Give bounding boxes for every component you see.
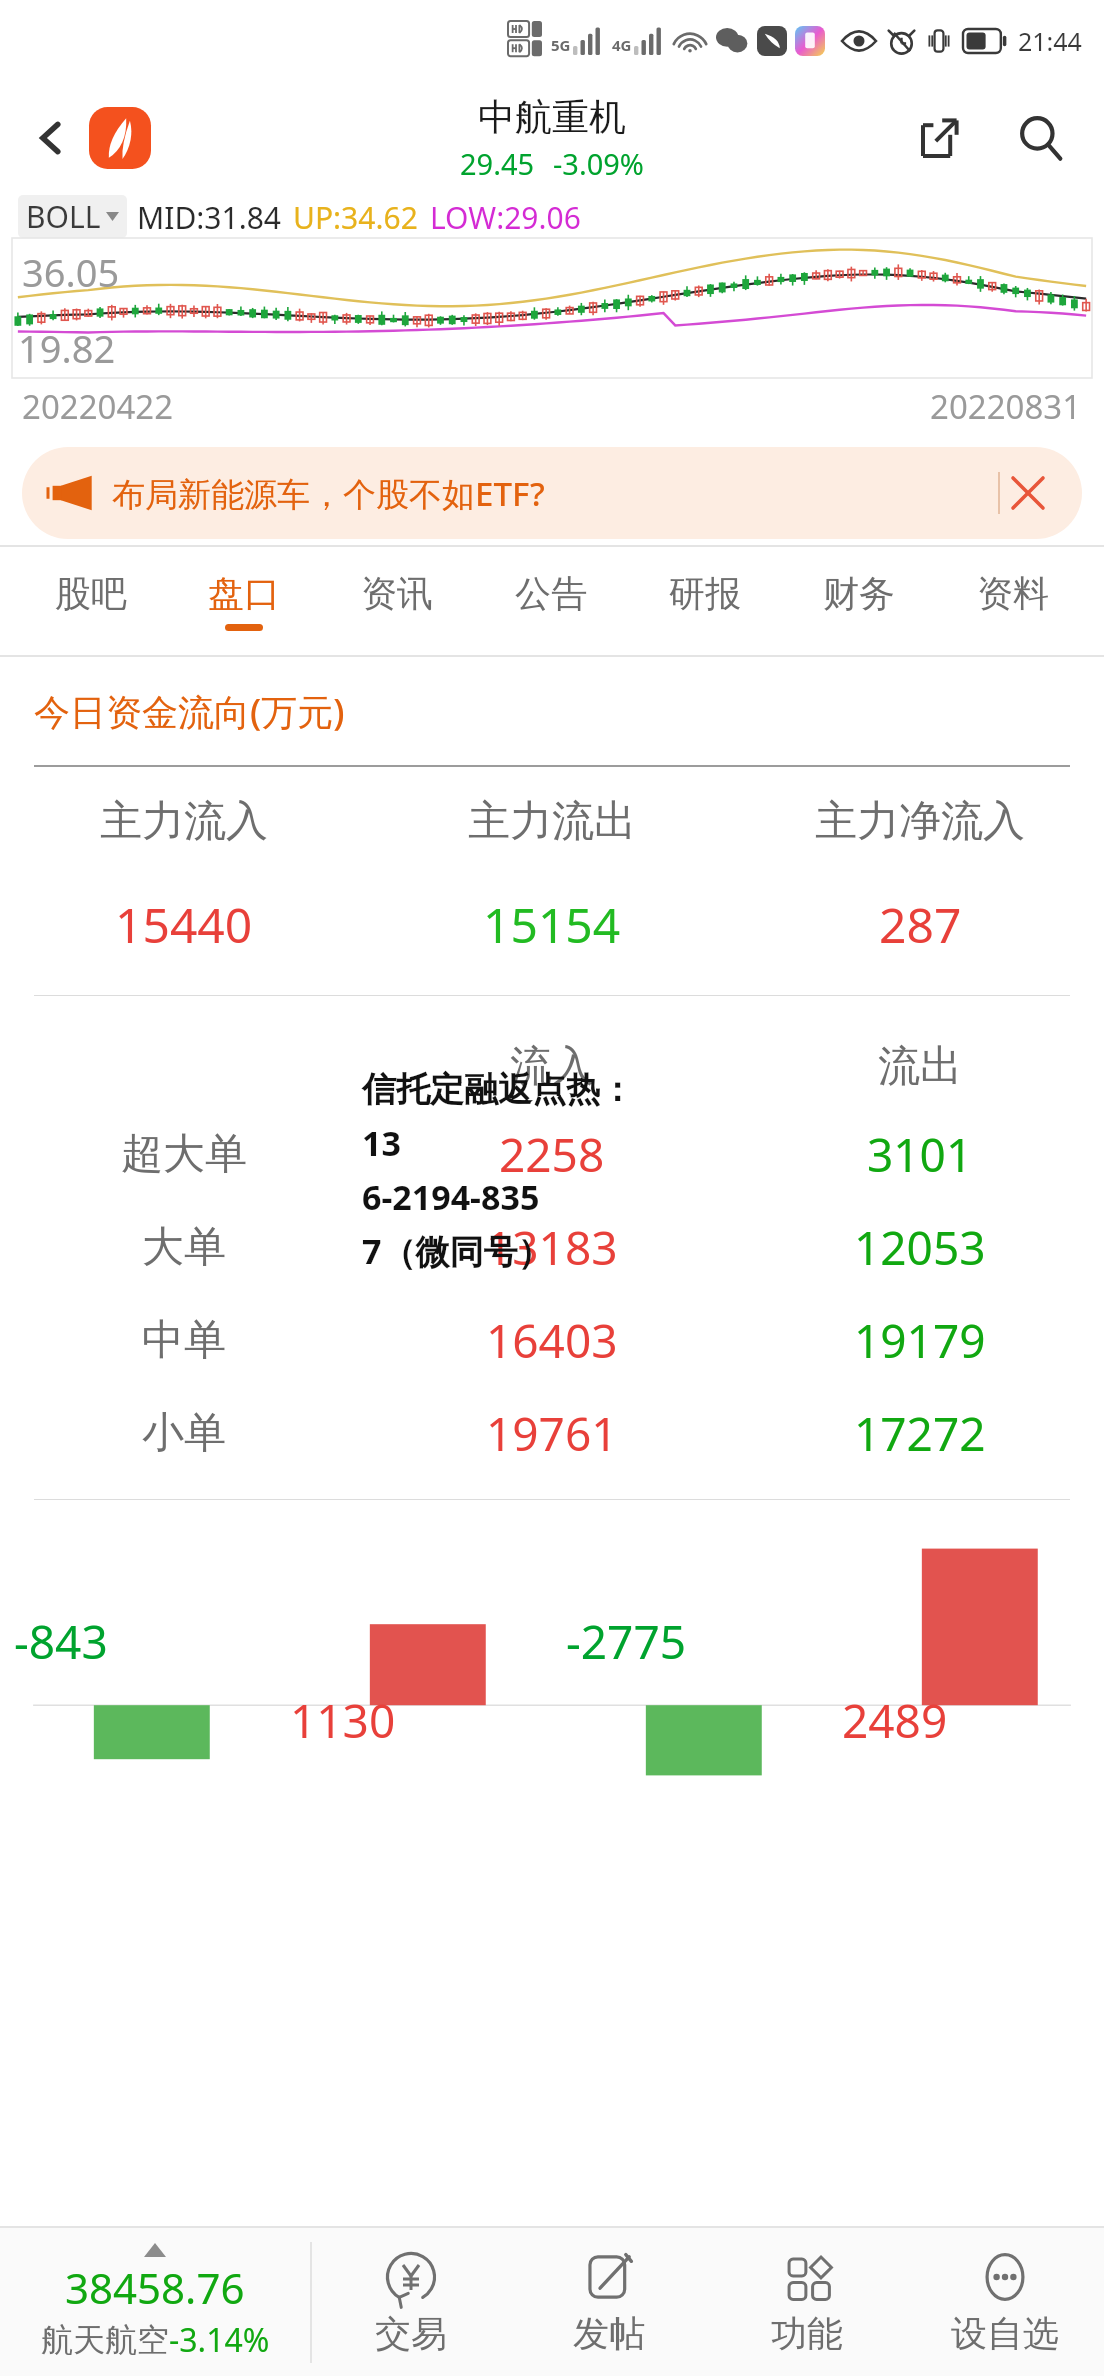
staticText: 布局新能源车，个股不如ETF? <box>112 471 545 516</box>
staticText: 29.45 <box>460 144 535 183</box>
staticText: 主力流入 <box>100 795 268 848</box>
button[interactable]: 设自选 <box>906 2228 1104 2376</box>
button[interactable]: 交易 <box>312 2228 510 2376</box>
staticText: -2775 <box>566 1610 687 1673</box>
button[interactable]: 小单 <box>0 1402 1104 1465</box>
button[interactable]: App logo <box>86 104 154 172</box>
staticText: -3.09% <box>553 144 644 183</box>
staticText: 资讯 <box>361 571 433 616</box>
staticText: 交易 <box>375 2311 447 2356</box>
staticText: 19761 <box>486 1402 618 1465</box>
button[interactable]: 38458.76 <box>0 2228 310 2376</box>
staticText: BOLL <box>26 196 101 237</box>
button[interactable]: Back <box>20 107 82 169</box>
staticText: 12053 <box>854 1216 986 1279</box>
staticText: 4G <box>612 35 632 55</box>
staticText: -3.14% <box>169 2318 270 2362</box>
staticText: 20220422 <box>22 384 174 429</box>
button[interactable]: 资讯 <box>320 547 474 655</box>
staticText: 15440 <box>115 892 253 957</box>
staticText: 17272 <box>854 1402 986 1465</box>
staticText: 信托定融返点热：13 6-2194-835 7（微同号） <box>362 1068 642 1274</box>
button[interactable]: 财务 <box>782 547 936 655</box>
staticText: 小单 <box>142 1407 226 1460</box>
staticText: 功能 <box>771 2311 843 2356</box>
staticText: 航天航空 <box>41 2320 169 2360</box>
staticText: 15154 <box>483 892 621 957</box>
staticText: 38458.76 <box>65 2259 245 2316</box>
staticText: 1130 <box>290 1689 396 1752</box>
staticText: 3101 <box>867 1123 973 1186</box>
button[interactable]: 大单 <box>0 1216 1104 1279</box>
staticText: 21:44 <box>1018 24 1082 58</box>
button[interactable]: 功能 <box>708 2228 906 2376</box>
button[interactable]: 超大单 <box>0 1123 1104 1186</box>
staticText: 超大单 <box>121 1128 247 1181</box>
staticText: 设自选 <box>951 2311 1059 2356</box>
staticText: 20220831 <box>930 384 1082 429</box>
staticText: 2489 <box>842 1689 948 1752</box>
staticText: 中单 <box>142 1314 226 1367</box>
button[interactable]: 盘口 <box>167 547 320 655</box>
staticText: 19179 <box>854 1309 986 1372</box>
staticText: 19.82 <box>18 322 116 374</box>
staticText: 财务 <box>823 571 895 616</box>
button[interactable]: 研报 <box>628 547 782 655</box>
staticText: 主力流出 <box>468 795 636 848</box>
button[interactable]: 中单 <box>0 1309 1104 1372</box>
staticText: 36.05 <box>22 246 120 298</box>
button[interactable]: 发帖 <box>510 2228 708 2376</box>
staticText: 资料 <box>977 571 1049 616</box>
staticText: 2258 <box>499 1123 605 1186</box>
staticText: 研报 <box>669 571 741 616</box>
staticText: 公告 <box>515 571 587 616</box>
button[interactable]: BOLL <box>26 196 119 237</box>
staticText: 16403 <box>486 1309 618 1372</box>
staticText: 发帖 <box>573 2311 645 2356</box>
button[interactable]: Close <box>1000 465 1056 521</box>
staticText: LOW:29.06 <box>430 197 581 238</box>
staticText: UP:34.62 <box>293 197 418 238</box>
button[interactable]: Share <box>906 105 972 171</box>
staticText: -843 <box>14 1610 108 1673</box>
button[interactable]: Search <box>1006 103 1076 173</box>
staticText: 股吧 <box>55 571 127 616</box>
staticText: 今日资金流向(万元) <box>34 687 345 736</box>
staticText: MID:31.84 <box>137 197 281 238</box>
button[interactable]: 股吧 <box>14 547 167 655</box>
staticText: 287 <box>879 892 962 957</box>
staticText: 中航重机 <box>478 94 626 141</box>
staticText: 主力净流入 <box>815 795 1025 848</box>
button[interactable]: 公告 <box>474 547 628 655</box>
button[interactable]: 中航重机 <box>460 94 644 183</box>
staticText: 盘口 <box>208 571 280 616</box>
button[interactable]: 布局新能源车，个股不如ETF? <box>22 447 1082 539</box>
staticText: 流出 <box>878 1040 962 1093</box>
staticText: 大单 <box>142 1221 226 1274</box>
staticText: 流入 <box>510 1040 594 1093</box>
staticText: 13183 <box>486 1216 618 1279</box>
button[interactable]: 资料 <box>936 547 1090 655</box>
staticText: 5G <box>551 35 571 55</box>
